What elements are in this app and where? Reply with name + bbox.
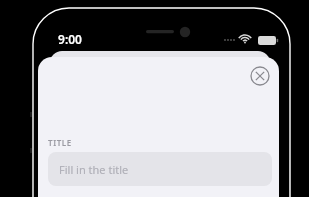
button[interactable]: Close [250, 66, 270, 86]
button[interactable]: Fill in the title [48, 152, 272, 186]
staticText: Fill in the title [59, 162, 129, 177]
staticText: TITLE [48, 137, 72, 148]
staticText: 9:00 [58, 31, 82, 47]
